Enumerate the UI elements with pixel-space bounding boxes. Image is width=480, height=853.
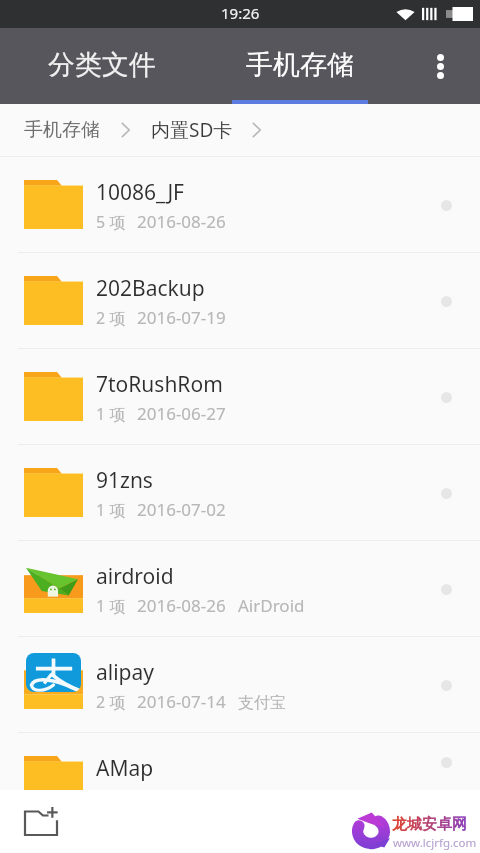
staticText: www.lcjrfg.com — [393, 835, 477, 851]
button[interactable]: alipay — [0, 637, 480, 732]
staticText: 分类文件 — [48, 48, 156, 82]
button[interactable]: airdroid — [0, 541, 480, 636]
staticText: 202Backup — [96, 274, 205, 303]
staticText: 手机存储 — [246, 48, 354, 82]
staticText: 2016-08-26 — [137, 210, 226, 233]
staticText: airdroid — [96, 562, 174, 591]
button[interactable]: Select — [429, 380, 463, 414]
staticText: 2016-07-19 — [137, 306, 226, 329]
staticText: 1 项 — [96, 595, 126, 617]
staticText: 1 项 — [96, 403, 126, 425]
button[interactable]: Select — [429, 188, 463, 222]
button[interactable]: 7toRushRom — [0, 349, 480, 444]
staticText: 91zns — [96, 466, 153, 495]
staticText: AMap — [96, 754, 154, 783]
staticText: 5 项 — [96, 211, 126, 233]
button[interactable]: Select — [429, 668, 463, 702]
button[interactable]: 10086_JF — [0, 157, 480, 252]
staticText: 2016-07-14 — [137, 690, 226, 713]
staticText: 内置SD卡 — [151, 117, 233, 143]
button[interactable]: Select — [429, 476, 463, 510]
button[interactable]: 手机存储 — [232, 28, 368, 104]
staticText: 2016-06-27 — [137, 402, 226, 425]
button[interactable]: Select — [429, 284, 463, 318]
button[interactable]: 手机存储 — [24, 110, 100, 150]
button[interactable]: AMap — [0, 733, 480, 790]
staticText: 7toRushRom — [96, 370, 223, 399]
button[interactable]: Select — [429, 572, 463, 606]
button[interactable]: 内置SD卡 — [151, 109, 233, 151]
staticText: 10086_JF — [96, 178, 185, 207]
staticText: 支付宝 — [238, 693, 286, 713]
staticText: 手机存储 — [24, 118, 100, 142]
staticText: 2 项 — [96, 691, 126, 713]
button[interactable]: New folder — [8, 792, 74, 852]
button[interactable]: More options — [412, 28, 468, 104]
staticText: AirDroid — [238, 594, 305, 617]
staticText: 龙城安卓网 — [392, 815, 467, 834]
button[interactable]: 91zns — [0, 445, 480, 540]
button[interactable]: 202Backup — [0, 253, 480, 348]
staticText: alipay — [96, 658, 155, 687]
staticText: 2016-07-02 — [137, 498, 226, 521]
staticText: 1 项 — [96, 499, 126, 521]
staticText: 2 项 — [96, 307, 126, 329]
staticText: 19:26 — [221, 3, 260, 23]
button[interactable]: Select — [429, 745, 463, 779]
button[interactable]: 分类文件 — [0, 28, 204, 104]
staticText: 2016-08-26 — [137, 594, 226, 617]
